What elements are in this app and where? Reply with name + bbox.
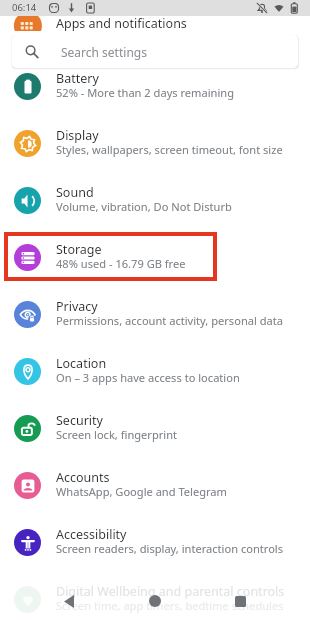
staticText: Storage — [56, 241, 102, 258]
button[interactable]: Security — [0, 400, 310, 457]
button[interactable]: Accessibility — [0, 514, 310, 571]
button[interactable]: Digital Wellbeing and parental controls — [0, 571, 310, 620]
button[interactable]: Battery — [0, 58, 310, 115]
staticText: Sound — [56, 184, 94, 201]
staticText: Battery — [56, 70, 99, 87]
staticText: Screen time, app timers, bedtime schedul… — [56, 598, 284, 613]
staticText: Display — [56, 127, 99, 144]
staticText: Accessibility — [56, 526, 127, 543]
button[interactable]: Display — [0, 115, 310, 172]
button[interactable]: Storage — [0, 229, 310, 286]
staticText: 52% - More than 2 days remaining — [56, 85, 234, 100]
button[interactable]: Apps and notifications — [0, 0, 310, 31]
staticText: Styles, wallpapers, screen timeout, font… — [56, 142, 283, 157]
staticText: 06:14 — [12, 1, 37, 14]
staticText: Apps and notifications — [56, 15, 187, 31]
staticText: 48% used - 16.79 GB free — [56, 256, 186, 271]
staticText: Digital Wellbeing and parental controls — [56, 583, 285, 600]
staticText: Screen lock, fingerprint — [56, 427, 178, 442]
button[interactable]: Recent apps — [213, 580, 267, 620]
staticText: Volume, vibration, Do Not Disturb — [56, 199, 232, 214]
staticText: Privacy — [56, 298, 98, 315]
staticText: Search settings — [61, 44, 147, 60]
staticText: WhatsApp, Google and Telegram — [56, 484, 227, 499]
button[interactable]: Location — [0, 343, 310, 400]
button[interactable]: Sound — [0, 172, 310, 229]
staticText: On – 3 apps have access to location — [56, 370, 240, 385]
staticText: Screen readers, display, interaction con… — [56, 541, 284, 556]
button[interactable]: Home — [128, 580, 182, 620]
button[interactable]: Accounts — [0, 457, 310, 514]
staticText: Location — [56, 355, 107, 372]
button[interactable]: Back — [42, 580, 96, 620]
staticText: Permissions, account activity, personal … — [56, 313, 283, 328]
staticText: Security — [56, 412, 103, 429]
staticText: Accounts — [56, 469, 110, 486]
button[interactable]: Privacy — [0, 286, 310, 343]
button[interactable]: Search settings — [12, 35, 298, 68]
